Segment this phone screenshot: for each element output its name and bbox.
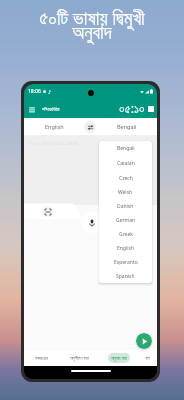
button[interactable]: Swap languages — [84, 121, 96, 133]
button[interactable]: অনুবাদ করা — [99, 350, 138, 366]
button[interactable]: Bengali — [96, 118, 157, 135]
button[interactable]: Welsh — [99, 185, 152, 199]
button[interactable]: অনুশীলন করা — [59, 350, 99, 366]
staticText: English — [117, 245, 135, 252]
button[interactable]: Voice input — [81, 212, 102, 233]
button[interactable]: শব্দভাণ্ডার — [24, 350, 59, 366]
staticText: অনুশীলন করা — [70, 355, 89, 361]
staticText: Spanish — [116, 273, 135, 280]
staticText: ♪ — [48, 89, 52, 95]
button[interactable]: Danish — [99, 199, 152, 213]
staticText: 18:06 — [28, 88, 41, 95]
button[interactable]: English — [99, 241, 152, 255]
button[interactable]: Bengali — [99, 141, 152, 156]
staticText: শব্দভাণ্ডার — [42, 106, 60, 112]
button[interactable]: Spanish — [99, 269, 152, 283]
button[interactable]: German — [99, 213, 152, 227]
button[interactable]: গান — [138, 350, 157, 366]
staticText: Danish — [117, 203, 134, 210]
staticText: English — [45, 123, 64, 130]
button[interactable]: Esperanto — [99, 255, 152, 269]
staticText: Czech — [119, 175, 133, 182]
button[interactable]: Czech — [99, 171, 152, 185]
staticText: Type your text here — [28, 139, 78, 146]
staticText: ০৫:১০ — [119, 100, 145, 117]
staticText: গান — [145, 356, 150, 361]
staticText: অনুবাদ — [72, 24, 112, 43]
staticText: Bengali — [117, 145, 135, 152]
staticText: ৫০টি ভাষায় দ্বিমুখী — [39, 5, 145, 31]
staticText: Catalan — [117, 160, 135, 167]
button[interactable]: Stop — [148, 106, 154, 112]
staticText: Bengali — [117, 123, 137, 130]
button[interactable]: Menu — [27, 104, 37, 114]
staticText: Greek — [119, 231, 133, 238]
staticText: অনুবাদ করা — [111, 355, 127, 361]
button[interactable]: Catalan — [99, 156, 152, 171]
button[interactable]: Scan text — [42, 206, 53, 217]
button[interactable]: Translate — [136, 333, 152, 349]
button[interactable]: English — [24, 118, 84, 135]
staticText: শব্দভাণ্ডার — [35, 356, 48, 361]
staticText: German — [116, 217, 136, 224]
button[interactable]: Greek — [99, 227, 152, 241]
staticText: Esperanto — [114, 259, 138, 266]
staticText: Welsh — [118, 189, 133, 196]
